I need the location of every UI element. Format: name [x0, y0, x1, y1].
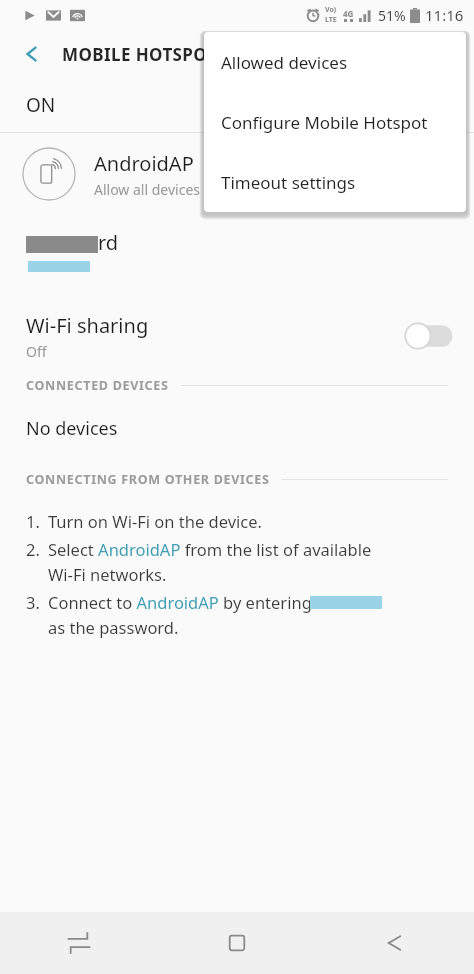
staticText: 2.	[26, 538, 40, 560]
staticText: Connect to AndroidAP by entering	[48, 591, 312, 613]
button[interactable]: Back	[316, 912, 474, 974]
staticText: No devices	[26, 416, 118, 441]
staticText: rd	[98, 229, 119, 256]
staticText: 1.	[26, 510, 40, 532]
button[interactable]: Configure Mobile Hotspot	[204, 92, 466, 152]
staticText: AndroidAP	[94, 150, 194, 177]
staticText: CONNECTING FROM OTHER DEVICES	[26, 471, 270, 488]
staticText: Timeout settings	[221, 171, 356, 194]
button[interactable]: ON	[0, 78, 474, 132]
staticText: 11:16	[425, 5, 464, 25]
staticText: 4G	[343, 8, 354, 19]
staticText: 3.	[26, 591, 40, 613]
button[interactable]: Recents	[0, 912, 158, 974]
staticText: as the password.	[48, 616, 179, 638]
staticText: Off	[26, 342, 47, 361]
button[interactable]: Wi-Fi sharing	[0, 295, 474, 377]
staticText: 51%	[378, 6, 406, 25]
staticText: Allowed devices	[221, 51, 348, 74]
staticText: Select AndroidAP from the list of availa…	[48, 538, 372, 560]
staticText: Configure Mobile Hotspot	[221, 111, 428, 134]
staticText: Turn on Wi-Fi on the device.	[48, 510, 262, 532]
button[interactable]: Allowed devices	[204, 32, 466, 92]
staticText: MOBILE HOTSPOT	[62, 43, 217, 66]
button[interactable]: Timeout settings	[204, 152, 466, 212]
button[interactable]: AndroidAP	[0, 133, 474, 215]
staticText: Wi-Fi sharing	[26, 312, 149, 339]
button[interactable]: Home	[158, 912, 316, 974]
staticText: Vo)	[325, 5, 337, 15]
button[interactable]: rd	[0, 215, 474, 295]
button[interactable]: Back	[14, 36, 50, 72]
staticText: Allow all devices	[94, 180, 200, 199]
staticText: CONNECTED DEVICES	[26, 377, 169, 394]
staticText: LTE	[325, 15, 337, 25]
staticText: ON	[26, 92, 56, 118]
staticText: Wi-Fi networks.	[48, 563, 167, 585]
